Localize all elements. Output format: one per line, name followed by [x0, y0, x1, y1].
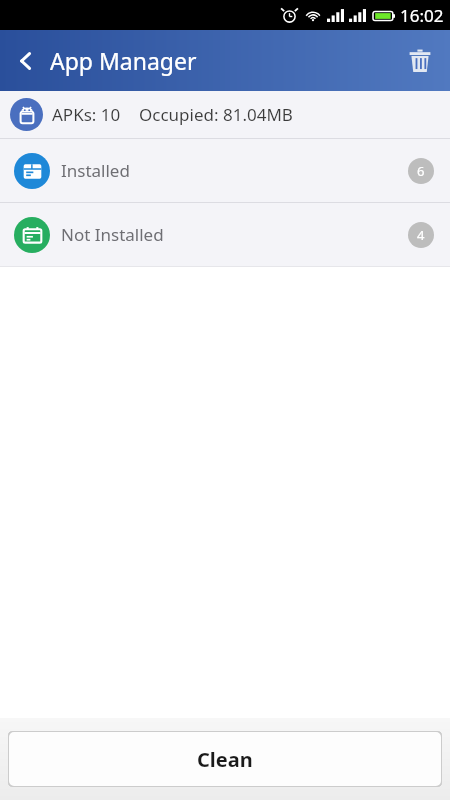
staticText: APKs: 10	[52, 103, 121, 126]
button[interactable]: Not Installed	[0, 203, 450, 266]
staticText: Not Installed	[61, 223, 164, 246]
staticText: 6	[417, 162, 425, 180]
button[interactable]: Clean	[8, 731, 442, 787]
staticText: App Manager	[50, 45, 197, 76]
staticText: 4	[417, 226, 425, 244]
staticText: Installed	[61, 159, 130, 182]
staticText: Clean	[197, 746, 253, 773]
button[interactable]: Back	[0, 30, 52, 91]
staticText: Occupied: 81.04MB	[139, 103, 293, 126]
staticText: 16:02	[400, 4, 444, 27]
button[interactable]: Delete	[390, 30, 450, 91]
button[interactable]: Installed	[0, 139, 450, 202]
